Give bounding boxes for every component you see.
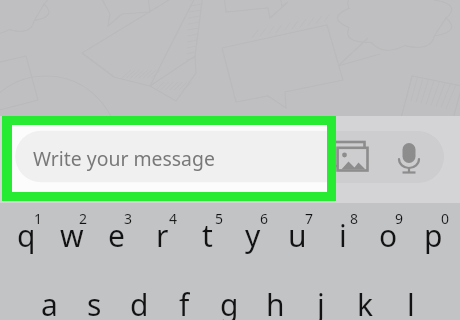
staticText: s	[87, 284, 102, 320]
staticText: 0	[441, 209, 450, 228]
button[interactable]: o	[366, 215, 411, 255]
staticText: 3	[124, 209, 133, 228]
staticText: 7	[305, 209, 314, 228]
staticText: y	[245, 215, 261, 255]
staticText: 4	[169, 209, 178, 228]
staticText: 2	[79, 209, 88, 228]
staticText: a	[41, 284, 58, 320]
button[interactable]: a	[27, 284, 72, 320]
staticText: 1	[34, 209, 43, 228]
button[interactable]: p	[411, 215, 456, 255]
staticText: d	[130, 284, 149, 320]
staticText: h	[266, 284, 285, 320]
staticText: i	[339, 215, 347, 255]
button[interactable]: r	[140, 215, 185, 255]
staticText: Write your message	[33, 145, 215, 171]
button[interactable]: f	[162, 284, 207, 320]
staticText: g	[220, 284, 239, 320]
button[interactable]: h	[253, 284, 298, 320]
staticText: 9	[395, 209, 404, 228]
button[interactable]: u	[275, 215, 320, 255]
staticText: k	[357, 284, 374, 320]
button[interactable]: Attach image	[330, 137, 376, 183]
button[interactable]: Write your message	[15, 131, 444, 183]
staticText: 6	[260, 209, 269, 228]
button[interactable]: e	[94, 215, 139, 255]
button[interactable]: w	[49, 215, 94, 255]
staticText: w	[60, 215, 84, 255]
button[interactable]: k	[343, 284, 388, 320]
staticText: e	[108, 215, 125, 255]
button[interactable]: j	[298, 284, 343, 320]
button[interactable]: q	[4, 215, 49, 255]
button[interactable]: d	[117, 284, 162, 320]
staticText: 5	[215, 209, 224, 228]
staticText: j	[317, 284, 325, 320]
staticText: l	[407, 284, 415, 320]
button[interactable]: l	[388, 284, 433, 320]
staticText: t	[202, 215, 213, 255]
staticText: o	[379, 215, 398, 255]
staticText: q	[17, 215, 36, 255]
staticText: r	[156, 215, 169, 255]
button[interactable]: g	[207, 284, 252, 320]
button[interactable]: i	[320, 215, 365, 255]
button[interactable]: Voice message	[392, 136, 432, 176]
button[interactable]: t	[185, 215, 230, 255]
button[interactable]: s	[72, 284, 117, 320]
button[interactable]: y	[230, 215, 275, 255]
staticText: Write your message	[33, 144, 215, 170]
staticText: p	[424, 215, 443, 255]
staticText: f	[179, 284, 190, 320]
staticText: u	[288, 215, 307, 255]
staticText: 8	[350, 209, 359, 228]
